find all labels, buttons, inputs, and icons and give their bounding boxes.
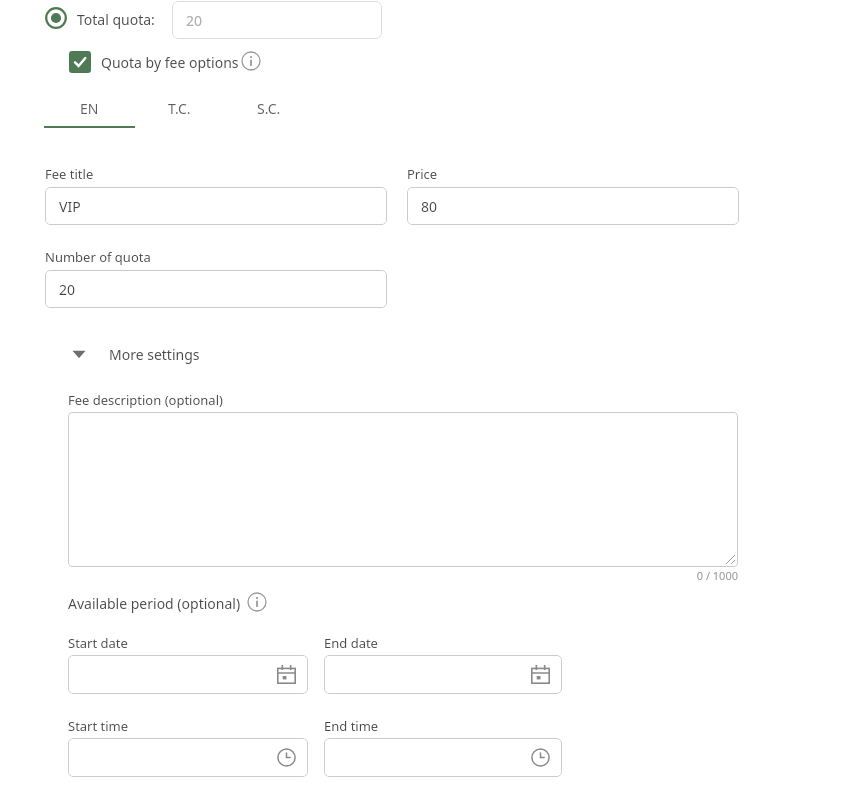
- button[interactable]: Information: [241, 51, 261, 71]
- button[interactable]: Total quota option: [45, 7, 67, 29]
- staticText: Total quota:: [77, 10, 155, 29]
- staticText: 20: [186, 11, 203, 30]
- button[interactable]: 80: [407, 187, 739, 225]
- button[interactable]: More settings: [68, 343, 200, 365]
- staticText: 0 / 1000: [640, 568, 738, 583]
- button[interactable]: EN: [44, 90, 135, 126]
- staticText: Fee description (optional): [68, 391, 223, 409]
- button[interactable]: Pick end date: [324, 655, 562, 694]
- staticText: Price: [407, 165, 438, 183]
- button[interactable]: [68, 412, 738, 567]
- staticText: Fee title: [45, 165, 94, 183]
- staticText: Start time: [68, 717, 129, 735]
- button[interactable]: S.C.: [224, 90, 314, 126]
- button[interactable]: 20: [45, 270, 387, 308]
- button[interactable]: VIP: [45, 187, 387, 225]
- button[interactable]: Information: [247, 592, 267, 612]
- staticText: End date: [324, 634, 378, 652]
- staticText: EN: [80, 99, 99, 118]
- button[interactable]: Pick end time: [324, 738, 562, 777]
- staticText: 80: [421, 197, 438, 216]
- button[interactable]: Pick start date: [68, 655, 308, 694]
- staticText: Number of quota: [45, 248, 151, 266]
- button[interactable]: Quota by fee options: [69, 51, 239, 73]
- staticText: Available period (optional): [68, 594, 241, 613]
- button[interactable]: Pick start time: [68, 738, 308, 777]
- staticText: Quota by fee options: [101, 53, 239, 72]
- staticText: More settings: [109, 345, 200, 364]
- staticText: T.C.: [168, 99, 191, 118]
- staticText: S.C.: [257, 99, 281, 118]
- staticText: Start date: [68, 634, 128, 652]
- button[interactable]: 20: [172, 1, 382, 39]
- button[interactable]: T.C.: [135, 90, 224, 126]
- staticText: 20: [59, 280, 76, 299]
- staticText: VIP: [59, 197, 81, 216]
- staticText: End time: [324, 717, 379, 735]
